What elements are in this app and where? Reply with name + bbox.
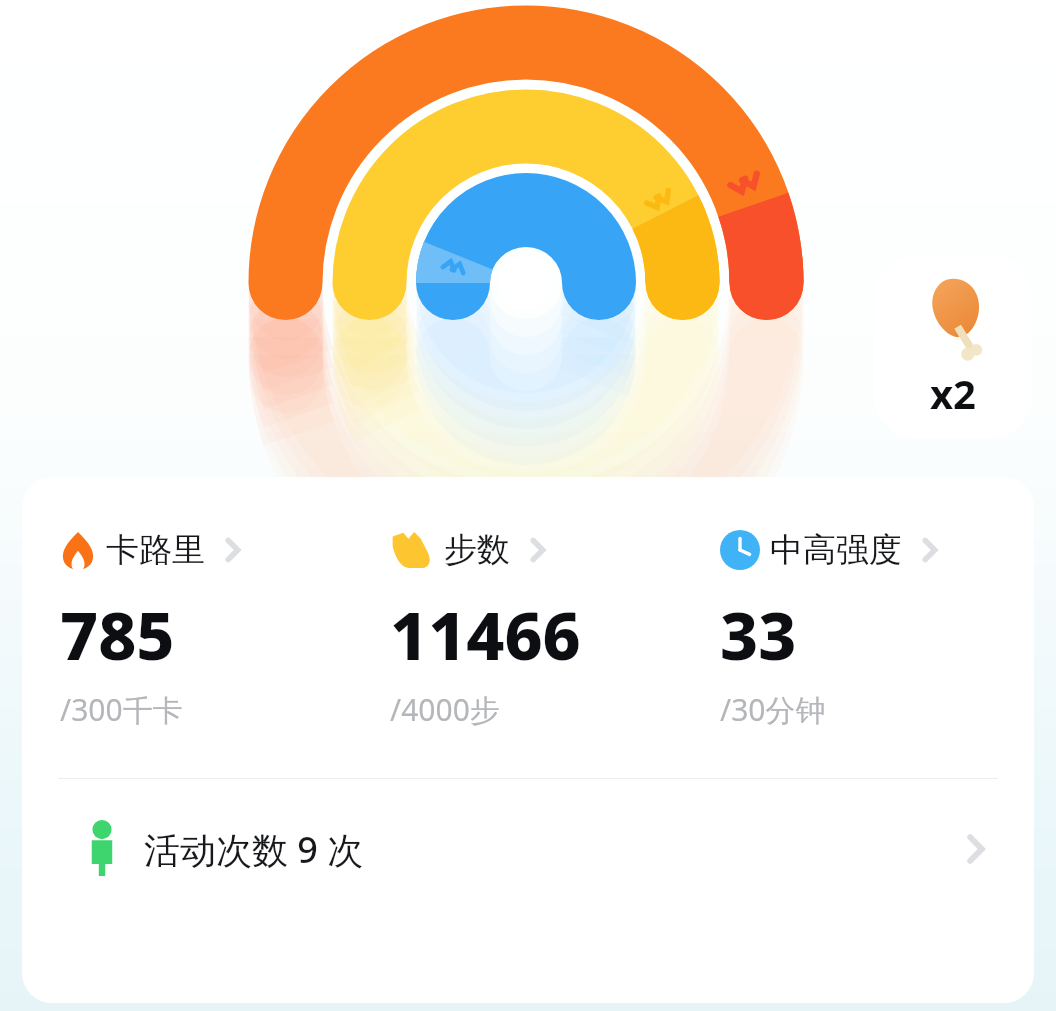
staticText: 785 [60,589,175,679]
staticText: /300千卡 [60,689,183,730]
staticText: x2 [930,366,976,420]
staticText: 11466 [390,589,581,679]
button[interactable]: 中高强度 [720,529,1020,730]
button[interactable]: 卡路里 [60,529,390,730]
staticText: 卡路里 [106,529,205,571]
staticText: /30分钟 [720,689,826,730]
staticText: /4000步 [390,689,500,730]
button[interactable]: 步数 [390,529,720,730]
staticText: 步数 [444,529,510,571]
staticText: 33 [720,589,797,679]
button[interactable]: Chicken reward, times 2 [874,255,1032,438]
button[interactable]: 活动次数 9 次 [22,779,1034,919]
staticText: 活动次数 9 次 [144,825,364,874]
staticText: 中高强度 [770,529,902,571]
